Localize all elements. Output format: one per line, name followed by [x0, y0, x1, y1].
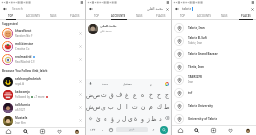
button[interactable]: ف — [115, 88, 123, 100]
button[interactable]: م — [147, 100, 155, 112]
button[interactable]: محمد.العلي — [86, 23, 171, 34]
button[interactable]: Tabriz Grand Bazaar — [172, 47, 256, 60]
button[interactable]: ١٢٣ — [86, 124, 99, 135]
button[interactable]: Profile — [68, 128, 85, 135]
button[interactable]: University of Tabriz — [172, 112, 256, 125]
button[interactable]: ج — [163, 88, 171, 100]
button[interactable]: د — [157, 112, 163, 124]
button[interactable]: ACCOUNTS — [108, 12, 129, 19]
button[interactable]: ك — [155, 100, 163, 112]
button[interactable]: TAGS — [129, 12, 150, 19]
button[interactable]: ز — [145, 112, 151, 124]
button[interactable]: ط — [163, 100, 171, 112]
button[interactable]: Voice input — [86, 79, 94, 88]
button[interactable]: ي — [100, 100, 107, 112]
button[interactable]: TAGS — [43, 12, 64, 19]
button[interactable]: ر — [115, 112, 121, 124]
button[interactable]: Tbriiz, Iran — [172, 60, 256, 73]
button[interactable]: ت — [131, 100, 139, 112]
button[interactable]: ل — [121, 112, 127, 124]
button[interactable]: Remove — [78, 118, 83, 123]
button[interactable]: Backspace — [163, 112, 171, 124]
staticText: Creative Co — [15, 47, 30, 51]
button[interactable]: Profile — [239, 126, 256, 135]
button[interactable]: New post — [205, 126, 222, 135]
button[interactable]: Tabriz El-Sufi — [172, 34, 256, 47]
button[interactable]: ن — [139, 100, 147, 112]
button[interactable]: ؤ — [109, 112, 115, 124]
button[interactable]: Remove — [78, 31, 83, 36]
button[interactable]: Activity — [222, 126, 239, 135]
button[interactable]: TAGS — [214, 12, 235, 19]
button[interactable]: ة — [133, 112, 139, 124]
button[interactable]: realmadrid — [0, 53, 85, 66]
button[interactable]: Home — [172, 126, 188, 135]
button[interactable]: sebhongthabriah — [0, 75, 85, 88]
button[interactable]: TOP — [86, 12, 108, 19]
staticText: tabriz — [182, 6, 192, 11]
button[interactable]: TOP — [0, 12, 22, 19]
button[interactable]: ، — [99, 124, 107, 135]
button[interactable]: Search — [17, 128, 34, 135]
button[interactable]: New post — [34, 128, 51, 135]
button[interactable]: TOP — [172, 12, 193, 19]
button[interactable]: و — [139, 112, 145, 124]
button[interactable]: ق — [107, 88, 115, 100]
button[interactable]: talkfurnia — [0, 101, 85, 114]
button[interactable]: Remove — [78, 92, 83, 97]
button[interactable]: Remove — [78, 44, 83, 49]
button[interactable]: Emoji — [107, 124, 115, 135]
button[interactable]: Search — [160, 126, 168, 134]
button[interactable]: ه — [139, 88, 147, 100]
button[interactable]: ل — [115, 100, 123, 112]
button[interactable]: Clear — [165, 7, 169, 11]
button[interactable]: PLACES — [64, 12, 85, 19]
button[interactable]: Tabriz, Iran — [172, 21, 256, 34]
staticText: Followed by — [15, 95, 30, 99]
button[interactable]: ع — [131, 88, 139, 100]
button[interactable]: ظ — [151, 112, 157, 124]
button[interactable]: غ — [123, 88, 131, 100]
button[interactable]: Space — [116, 127, 148, 132]
button[interactable]: ب — [107, 100, 115, 112]
button[interactable]: ش — [86, 100, 93, 112]
button[interactable]: Home — [0, 128, 17, 135]
button[interactable]: Remove — [78, 57, 83, 62]
button[interactable]: kaboomjo — [0, 88, 85, 101]
button[interactable]: س — [93, 100, 100, 112]
button[interactable]: Back — [174, 6, 180, 12]
button[interactable]: khwofbeat — [0, 27, 85, 40]
button[interactable]: م — [139, 79, 162, 88]
button[interactable]: ث — [100, 88, 107, 100]
button[interactable]: Shift — [86, 112, 95, 124]
button[interactable]: ACCOUNTS — [22, 12, 43, 19]
button[interactable]: Back — [2, 6, 8, 12]
button[interactable]: Google — [162, 79, 171, 88]
button[interactable]: ح — [155, 88, 163, 100]
button[interactable]: Search — [188, 126, 205, 135]
button[interactable]: ACCOUNTS — [193, 12, 214, 19]
button[interactable]: Tabriz University — [172, 99, 256, 112]
button[interactable]: ئ — [95, 112, 102, 124]
button[interactable]: TABRIZFR — [172, 73, 256, 86]
button[interactable]: مستقبل — [116, 79, 139, 88]
button[interactable]: Remove — [78, 105, 83, 110]
button[interactable]: ى — [127, 112, 133, 124]
button[interactable]: PLACES — [150, 12, 171, 19]
button[interactable]: Clear — [250, 7, 254, 11]
button[interactable]: Activity — [51, 128, 68, 135]
button[interactable]: ا — [123, 100, 131, 112]
button[interactable]: Back — [88, 6, 94, 12]
button[interactable]: ض — [86, 88, 93, 100]
button[interactable]: mdi.kimstar — [0, 40, 85, 53]
button[interactable]: Mustafa — [0, 114, 85, 127]
button[interactable]: خ — [147, 88, 155, 100]
button[interactable]: Remove — [78, 79, 83, 84]
button[interactable]: ء — [102, 112, 109, 124]
button[interactable]: محمد — [94, 79, 116, 88]
button[interactable]: PLACES — [235, 12, 256, 19]
button[interactable]: .؟ — [149, 124, 157, 135]
staticText: ئ — [96, 115, 101, 122]
button[interactable]: tvf — [172, 86, 256, 99]
button[interactable]: ص — [93, 88, 100, 100]
